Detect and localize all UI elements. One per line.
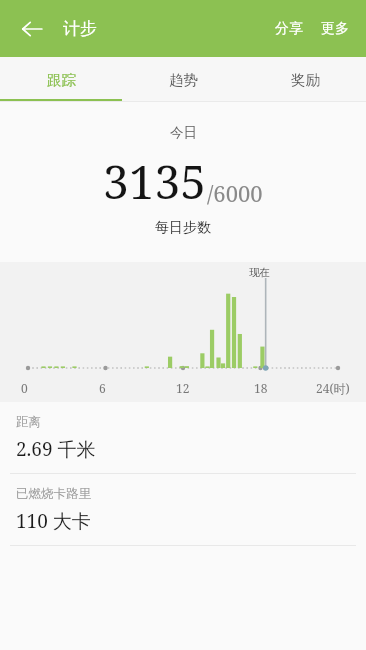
button[interactable]: 更多 <box>312 10 358 48</box>
button[interactable]: 已燃烧卡路里 <box>0 474 366 545</box>
staticText: 2.69 千米 <box>16 436 96 462</box>
staticText: 今日 <box>170 124 197 141</box>
staticText: 已燃烧卡路里 <box>16 486 91 502</box>
staticText: 现在 <box>249 266 270 279</box>
staticText: 跟踪 <box>47 71 76 89</box>
staticText: 0 <box>21 380 28 396</box>
staticText: 3135 <box>103 150 206 213</box>
staticText: 24(时) <box>316 380 350 396</box>
staticText: 距离 <box>16 414 41 430</box>
button[interactable]: 距离 <box>0 402 366 473</box>
staticText: 110 大卡 <box>16 508 91 534</box>
staticText: 18 <box>254 380 268 396</box>
button[interactable]: 奖励 <box>244 57 366 102</box>
button[interactable]: 分享 <box>266 10 312 48</box>
staticText: 趋势 <box>169 71 198 89</box>
button[interactable]: 趋势 <box>122 57 244 102</box>
staticText: 更多 <box>321 20 349 38</box>
button[interactable]: Back <box>10 7 54 51</box>
button[interactable]: 跟踪 <box>0 57 122 102</box>
staticText: 6 <box>99 380 106 396</box>
staticText: 每日步数 <box>155 219 211 237</box>
staticText: /6000 <box>207 178 263 208</box>
staticText: 分享 <box>275 20 303 38</box>
staticText: 奖励 <box>291 71 320 89</box>
staticText: 计步 <box>63 18 97 39</box>
staticText: 12 <box>176 380 190 396</box>
